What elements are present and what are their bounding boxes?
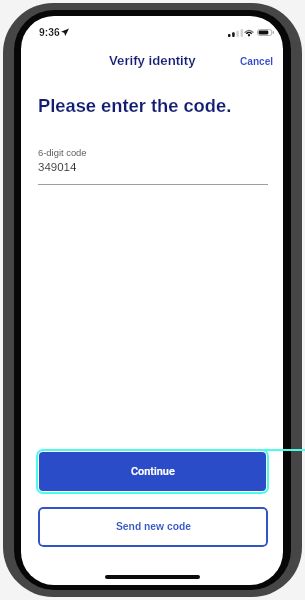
staticText: 9:36: [39, 27, 60, 39]
button[interactable]: Send new code: [38, 507, 268, 547]
staticText: Continue: [131, 465, 175, 478]
button[interactable]: Continue: [39, 452, 266, 491]
staticText: Please enter the code.: [38, 95, 232, 115]
button[interactable]: Cancel: [235, 52, 279, 71]
staticText: Send new code: [116, 521, 191, 533]
staticText: 349014: [38, 161, 77, 174]
staticText: Verify identity: [109, 53, 196, 68]
staticText: Cancel: [240, 56, 274, 67]
staticText: 6-digit code: [38, 147, 87, 158]
